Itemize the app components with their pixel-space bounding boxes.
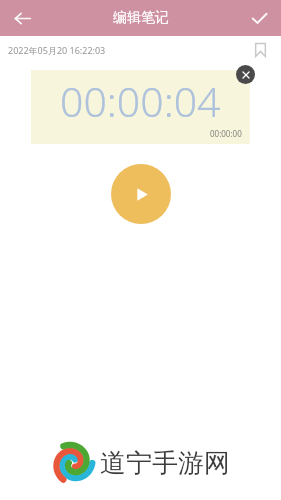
button[interactable]: Bookmark [247,37,273,63]
staticText: 编辑笔记 [113,9,169,27]
button[interactable]: Back [6,2,38,34]
staticText: 2022年05月20 16:22:03 [8,44,106,56]
button[interactable]: 00:00:04 [31,70,250,144]
button[interactable]: Close [236,65,255,84]
button[interactable]: Play [111,164,171,224]
staticText: 00:00:00 [210,128,242,139]
button[interactable]: Save [243,2,275,34]
staticText: 00:00:04 [60,73,221,129]
staticText: 道宁手游网 [100,447,230,480]
